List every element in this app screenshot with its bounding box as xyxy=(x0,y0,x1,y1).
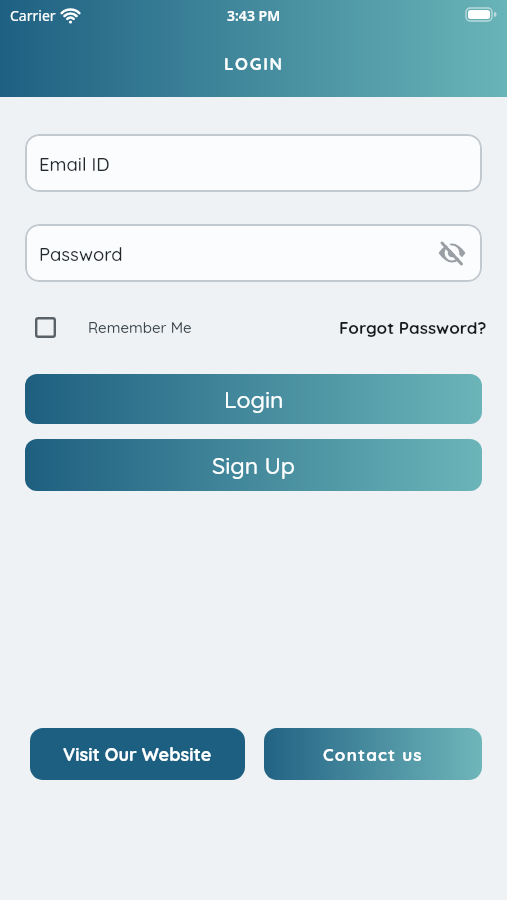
button[interactable]: Contact us xyxy=(264,728,482,780)
button[interactable]: Login xyxy=(25,374,482,424)
button[interactable]: Forgot Password? xyxy=(339,317,487,338)
staticText: Email ID xyxy=(39,152,110,175)
staticText: LOGIN xyxy=(224,53,284,74)
button[interactable]: Password xyxy=(25,224,482,282)
button[interactable]: Remember Me xyxy=(35,317,192,338)
staticText: Carrier xyxy=(10,6,56,25)
staticText: Login xyxy=(224,385,284,414)
staticText: Contact us xyxy=(323,744,423,765)
staticText: Password xyxy=(39,242,123,265)
staticText: 3:43 PM xyxy=(227,6,281,25)
button[interactable]: Visit Our Website xyxy=(30,728,245,780)
button[interactable]: Sign Up xyxy=(25,439,482,491)
staticText: Visit Our Website xyxy=(63,743,212,766)
staticText: Remember Me xyxy=(88,318,192,337)
button[interactable]: Email ID xyxy=(25,134,482,192)
staticText: Forgot Password? xyxy=(339,317,487,338)
staticText: Sign Up xyxy=(212,451,295,480)
